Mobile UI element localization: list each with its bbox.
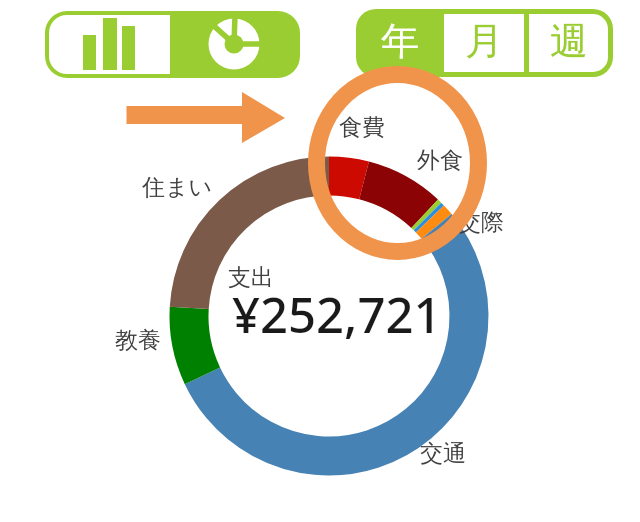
staticText: 住まい — [142, 173, 213, 202]
staticText: 年 — [381, 17, 419, 65]
button[interactable]: 月 — [444, 14, 524, 72]
button[interactable]: 週 — [529, 14, 608, 72]
staticText: 教養 — [115, 326, 161, 355]
staticText: 支出 — [228, 263, 274, 292]
staticText: 外食 — [417, 146, 463, 175]
button[interactable]: Bar chart view — [49, 15, 170, 74]
staticText: 交際 — [458, 208, 504, 237]
button[interactable]: 年 — [356, 9, 444, 77]
staticText: 交通 — [420, 439, 466, 468]
staticText: 週 — [550, 17, 588, 65]
staticText: 月 — [465, 17, 503, 65]
staticText: ¥252,721 — [232, 281, 442, 348]
staticText: 食費 — [339, 113, 385, 142]
button[interactable]: Pie chart view — [170, 11, 300, 78]
